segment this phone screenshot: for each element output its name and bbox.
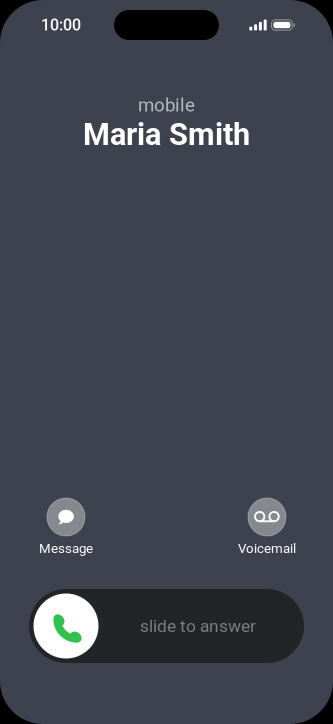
- staticText: mobile: [138, 94, 195, 116]
- staticText: Maria Smith: [83, 116, 250, 152]
- button[interactable]: Voicemail: [227, 498, 307, 555]
- staticText: Voicemail: [238, 541, 296, 556]
- staticText: 10:00: [41, 16, 81, 34]
- staticText: Message: [39, 541, 93, 556]
- staticText: slide to answer: [140, 616, 256, 636]
- button[interactable]: slide to answer: [29, 589, 304, 663]
- button[interactable]: Message: [26, 498, 106, 555]
